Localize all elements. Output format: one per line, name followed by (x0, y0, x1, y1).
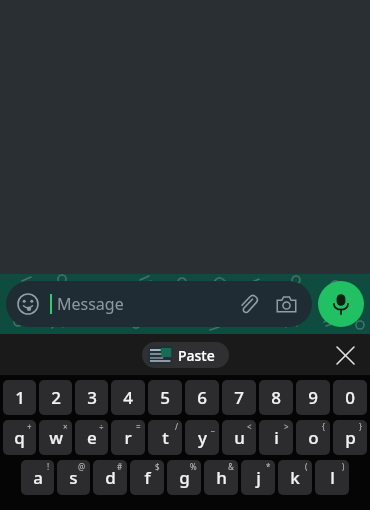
staticText: $ (155, 461, 160, 472)
staticText: # (117, 461, 123, 472)
button[interactable]: Emoji (6, 281, 312, 327)
staticText: t (162, 426, 169, 449)
staticText: k (290, 466, 300, 489)
staticText: + (27, 421, 32, 432)
button[interactable]: o (296, 420, 330, 455)
staticText: × (63, 421, 68, 432)
staticText: ÷ (99, 421, 104, 432)
button[interactable]: 5 (148, 380, 182, 415)
staticText: * (266, 461, 271, 472)
staticText: Paste (178, 346, 215, 365)
button[interactable]: Paste (142, 342, 229, 368)
staticText: s (69, 466, 78, 489)
button[interactable]: Close (330, 340, 360, 370)
staticText: l (330, 466, 335, 489)
staticText: d (105, 466, 116, 489)
button[interactable]: 7 (222, 380, 256, 415)
button[interactable]: d (93, 460, 127, 495)
staticText: y (198, 426, 207, 449)
staticText: q (14, 426, 25, 449)
staticText: = (136, 421, 141, 432)
staticText: a (33, 466, 43, 489)
staticText: @ (78, 461, 86, 472)
button[interactable]: s (57, 460, 90, 495)
button[interactable]: l (315, 460, 349, 495)
staticText: 0 (345, 386, 355, 409)
button[interactable]: Voice message (318, 281, 364, 327)
button[interactable]: y (185, 420, 219, 455)
button[interactable]: 2 (39, 380, 72, 415)
staticText: o (308, 426, 319, 449)
staticText: ( (305, 461, 308, 472)
button[interactable]: g (167, 460, 201, 495)
staticText: g (179, 466, 190, 489)
button[interactable]: 4 (111, 380, 145, 415)
button[interactable]: Emoji (15, 291, 41, 317)
button[interactable]: j (241, 460, 275, 495)
button[interactable]: f (130, 460, 164, 495)
staticText: < (247, 421, 252, 432)
button[interactable]: k (278, 460, 312, 495)
staticText: 6 (197, 386, 207, 409)
staticText: ) (342, 461, 345, 472)
staticText: w (49, 426, 63, 449)
button[interactable]: 8 (259, 380, 293, 415)
staticText: _ (211, 421, 215, 432)
staticText: 8 (271, 386, 281, 409)
button[interactable]: w (39, 420, 72, 455)
staticText: r (124, 426, 132, 449)
button[interactable]: 1 (3, 380, 36, 415)
staticText: ! (47, 461, 50, 472)
staticText: & (228, 461, 234, 472)
staticText: 5 (160, 386, 170, 409)
staticText: { (322, 421, 326, 432)
staticText: Message (57, 293, 124, 315)
staticText: / (175, 421, 178, 432)
button[interactable]: Attach (233, 289, 263, 319)
staticText: 2 (51, 386, 61, 409)
button[interactable]: p (333, 420, 367, 455)
button[interactable]: Camera (271, 289, 301, 319)
button[interactable]: 6 (185, 380, 219, 415)
button[interactable]: 3 (75, 380, 108, 415)
staticText: i (274, 426, 279, 449)
button[interactable]: e (75, 420, 108, 455)
button[interactable]: u (222, 420, 256, 455)
staticText: > (284, 421, 289, 432)
staticText: f (144, 466, 151, 489)
button[interactable]: 0 (333, 380, 367, 415)
staticText: % (190, 461, 197, 472)
button[interactable]: r (111, 420, 145, 455)
button[interactable]: t (148, 420, 182, 455)
staticText: h (216, 466, 227, 489)
button[interactable]: a (21, 460, 54, 495)
button[interactable]: q (3, 420, 36, 455)
staticText: 3 (87, 386, 97, 409)
staticText: } (359, 421, 363, 432)
staticText: u (234, 426, 245, 449)
staticText: j (256, 466, 261, 489)
staticText: e (87, 426, 97, 449)
button[interactable]: h (204, 460, 238, 495)
staticText: 1 (15, 386, 25, 409)
staticText: 4 (123, 386, 133, 409)
button[interactable]: i (259, 420, 293, 455)
staticText: p (345, 426, 356, 449)
staticText: 7 (234, 386, 244, 409)
staticText: 9 (308, 386, 318, 409)
button[interactable]: 9 (296, 380, 330, 415)
